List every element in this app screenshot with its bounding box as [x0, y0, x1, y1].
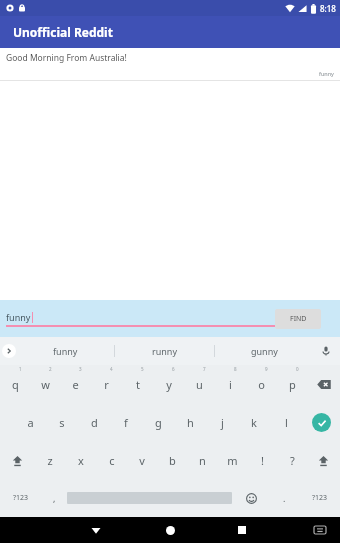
button[interactable]: o [246, 365, 277, 403]
staticText: y [166, 377, 172, 392]
button[interactable]: w [30, 365, 60, 403]
staticText: f [124, 415, 128, 430]
button[interactable]: e [60, 365, 91, 403]
button[interactable]: g [142, 403, 174, 441]
staticText: a [27, 415, 34, 430]
staticText: h [187, 415, 194, 430]
button[interactable]: c [96, 441, 127, 479]
staticText: gunny [251, 345, 278, 357]
button[interactable]: funny [16, 337, 114, 365]
button[interactable]: r [91, 365, 122, 403]
staticText: funny [319, 70, 334, 77]
staticText: , [53, 492, 56, 504]
button[interactable]: h [174, 403, 206, 441]
staticText: 1 [19, 366, 22, 372]
button[interactable]: Change keyboard [310, 520, 330, 540]
staticText: FIND [290, 314, 307, 324]
staticText: g [155, 415, 162, 430]
button[interactable]: u [184, 365, 215, 403]
staticText: u [196, 377, 203, 392]
staticText: p [289, 377, 296, 392]
button[interactable]: Shift [307, 441, 340, 479]
staticText: x [78, 453, 84, 468]
staticText: 7 [203, 366, 206, 372]
button[interactable]: Voice input [318, 343, 334, 359]
staticText: l [285, 415, 288, 430]
staticText: funny [6, 311, 31, 323]
button[interactable]: n [187, 441, 217, 479]
staticText: r [104, 377, 109, 392]
staticText: o [258, 377, 265, 392]
button[interactable]: Back [86, 520, 106, 540]
button[interactable]: Emoji [232, 479, 270, 517]
staticText: n [199, 453, 206, 468]
button[interactable]: i [215, 365, 246, 403]
button[interactable]: ?123 [299, 479, 340, 517]
staticText: Unofficial Reddit [13, 24, 113, 40]
button[interactable]: d [78, 403, 110, 441]
button[interactable]: t [122, 365, 153, 403]
button[interactable]: p [277, 365, 308, 403]
button[interactable]: runny [115, 337, 214, 365]
staticText: c [109, 453, 115, 468]
button[interactable]: a [15, 403, 46, 441]
staticText: . [283, 492, 286, 504]
staticText: z [47, 453, 53, 468]
staticText: ?123 [312, 493, 328, 503]
staticText: j [221, 415, 224, 430]
button[interactable]: k [238, 403, 270, 441]
button[interactable]: Backspace [308, 365, 340, 403]
button[interactable]: Enter [302, 403, 340, 441]
staticText: k [251, 415, 257, 430]
button[interactable]: b [157, 441, 187, 479]
button[interactable]: gunny [215, 337, 314, 365]
button[interactable]: . [270, 479, 299, 517]
button[interactable]: y [153, 365, 184, 403]
staticText: ?123 [13, 493, 29, 503]
button[interactable]: More suggestions [2, 344, 16, 358]
staticText: 4 [110, 366, 113, 372]
staticText: ? [290, 453, 295, 468]
staticText: 2 [49, 366, 52, 372]
staticText: t [136, 377, 140, 392]
button[interactable]: v [127, 441, 157, 479]
staticText: w [41, 377, 50, 392]
button[interactable]: Home [160, 520, 180, 540]
staticText: d [91, 415, 98, 430]
button[interactable]: j [206, 403, 238, 441]
button[interactable]: l [270, 403, 302, 441]
button[interactable]: , [42, 479, 67, 517]
button[interactable]: m [217, 441, 247, 479]
staticText: funny [53, 345, 78, 357]
button[interactable]: z [34, 441, 65, 479]
button[interactable]: FIND [275, 309, 321, 329]
staticText: 5 [141, 366, 144, 372]
button[interactable]: s [46, 403, 78, 441]
staticText: ! [261, 453, 264, 468]
staticText: 8:18 [320, 3, 336, 14]
staticText: 3 [79, 366, 82, 372]
staticText: 8 [234, 366, 237, 372]
staticText: s [59, 415, 65, 430]
button[interactable]: ! [247, 441, 277, 479]
button[interactable]: ?123 [0, 479, 42, 517]
button[interactable]: f [110, 403, 142, 441]
staticText: Good Morning From Australia! [6, 52, 127, 64]
staticText: 6 [172, 366, 175, 372]
staticText: i [229, 377, 232, 392]
button[interactable]: Recent apps [232, 520, 252, 540]
staticText: e [72, 377, 79, 392]
button[interactable]: ? [277, 441, 307, 479]
staticText: 0 [296, 366, 299, 372]
button[interactable]: q [0, 365, 30, 403]
button[interactable]: funny [6, 311, 278, 327]
button[interactable]: Good Morning From Australia! [0, 48, 340, 80]
staticText: 9 [265, 366, 268, 372]
button[interactable]: Shift [0, 441, 34, 479]
button[interactable]: x [65, 441, 96, 479]
staticText: m [227, 453, 238, 468]
staticText: q [12, 377, 19, 392]
staticText: b [169, 453, 176, 468]
staticText: runny [152, 345, 177, 357]
